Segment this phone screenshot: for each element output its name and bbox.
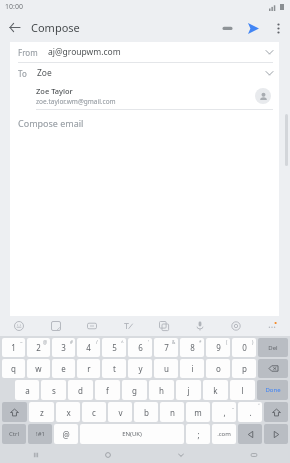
button[interactable]: Ctrl (2, 424, 26, 444)
staticText: f (106, 385, 109, 396)
staticText: k (213, 385, 218, 396)
button[interactable]: n (160, 402, 184, 422)
button[interactable]: GIF (74, 316, 110, 336)
button[interactable]: 8 (180, 338, 204, 357)
button[interactable]: d (68, 380, 93, 400)
button[interactable]: Back (0, 13, 29, 42)
button[interactable]: j (176, 380, 201, 400)
staticText: 9 (216, 342, 221, 353)
button[interactable]: h (149, 380, 174, 400)
button[interactable]: y (128, 359, 152, 378)
button[interactable]: 7 (154, 338, 178, 357)
button[interactable]: @ (54, 424, 78, 444)
button[interactable]: 2 (27, 338, 50, 357)
button[interactable]: p (232, 359, 256, 378)
button[interactable]: Del (258, 338, 288, 357)
button[interactable]: EN(UK) (80, 424, 184, 444)
button[interactable]: q (2, 359, 25, 378)
button[interactable]: From (10, 42, 279, 62)
button[interactable]: t (102, 359, 126, 378)
button[interactable]: b (134, 402, 158, 422)
button[interactable]: u (154, 359, 178, 378)
button[interactable]: e (52, 359, 75, 378)
button[interactable]: 3 (52, 338, 75, 357)
button[interactable]: w (27, 359, 50, 378)
staticText: n (170, 407, 175, 418)
button[interactable]: 0 (232, 338, 256, 357)
button[interactable]: !#1 (28, 424, 52, 444)
button[interactable]: Stickers (37, 316, 74, 336)
staticText: z (40, 407, 44, 418)
staticText: Zoe (37, 67, 52, 79)
button[interactable]: Handwriting (110, 316, 146, 336)
button[interactable]: More (254, 316, 290, 336)
button[interactable]: i (180, 359, 204, 378)
button[interactable]: Emoji (0, 316, 37, 336)
staticText: d (78, 385, 83, 396)
button[interactable]: m (186, 402, 210, 422)
staticText: @ (62, 429, 70, 440)
staticText: Zoe Taylor (36, 86, 73, 96)
staticText: l (241, 385, 244, 396)
button[interactable]: Recent apps (0, 446, 72, 463)
button[interactable]: . (238, 402, 262, 422)
button[interactable]: f (95, 380, 120, 400)
button[interactable]: k (203, 380, 228, 400)
button[interactable]: r (77, 359, 100, 378)
button[interactable]: .com (212, 424, 236, 444)
button[interactable]: a (15, 380, 39, 400)
staticText: Del (268, 344, 278, 352)
button[interactable]: o (206, 359, 230, 378)
button[interactable]: Zoe Taylor (10, 83, 279, 109)
staticText: ˘ (258, 403, 260, 409)
button[interactable]: 9 (206, 338, 230, 357)
staticText: g (132, 385, 137, 396)
button[interactable]: 1 (2, 338, 25, 357)
button[interactable]: Attach file (214, 15, 240, 41)
staticText: o (216, 363, 221, 374)
button[interactable]: , (212, 402, 236, 422)
staticText: 4 (86, 342, 91, 353)
staticText: m (194, 407, 202, 418)
staticText: ' (148, 339, 150, 345)
staticText: j (187, 385, 190, 396)
staticText: Compose (31, 20, 80, 35)
button[interactable]: Backspace (258, 359, 288, 378)
button[interactable]: v (108, 402, 132, 422)
staticText: .com (217, 430, 231, 438)
button[interactable]: Translate (146, 316, 182, 336)
button[interactable]: z (29, 402, 54, 422)
button[interactable]: Voice input (182, 316, 218, 336)
button[interactable]: c (82, 402, 106, 422)
staticText: 8 (190, 342, 195, 353)
button[interactable]: Home (72, 446, 144, 463)
button[interactable]: Move cursor left (238, 424, 262, 444)
staticText: r (87, 363, 91, 374)
staticText: 2 (36, 342, 41, 353)
staticText: / (96, 339, 98, 345)
staticText: 0 (242, 342, 247, 353)
staticText: 10:00 (5, 2, 23, 12)
button[interactable]: Move cursor right (264, 424, 288, 444)
button[interactable]: Done (257, 380, 288, 400)
button[interactable]: More options (266, 16, 290, 40)
button[interactable]: g (122, 380, 147, 400)
button[interactable]: s (41, 380, 66, 400)
staticText: e (61, 363, 66, 374)
button[interactable]: Shift (264, 402, 288, 422)
button[interactable]: Shift (2, 402, 27, 422)
button[interactable]: Send (240, 15, 266, 41)
button[interactable]: l (230, 380, 255, 400)
button[interactable]: ; (186, 424, 210, 444)
button[interactable]: 6 (128, 338, 152, 357)
button[interactable]: 4 (77, 338, 100, 357)
staticText: 6 (138, 342, 143, 353)
button[interactable]: 5 (102, 338, 126, 357)
staticText: EN(UK) (122, 430, 142, 438)
staticText: 3 (61, 342, 66, 353)
button[interactable]: To (10, 63, 279, 83)
button[interactable]: x (56, 402, 80, 422)
button[interactable]: Settings (218, 316, 254, 336)
button[interactable]: Switch keyboard (217, 446, 290, 463)
